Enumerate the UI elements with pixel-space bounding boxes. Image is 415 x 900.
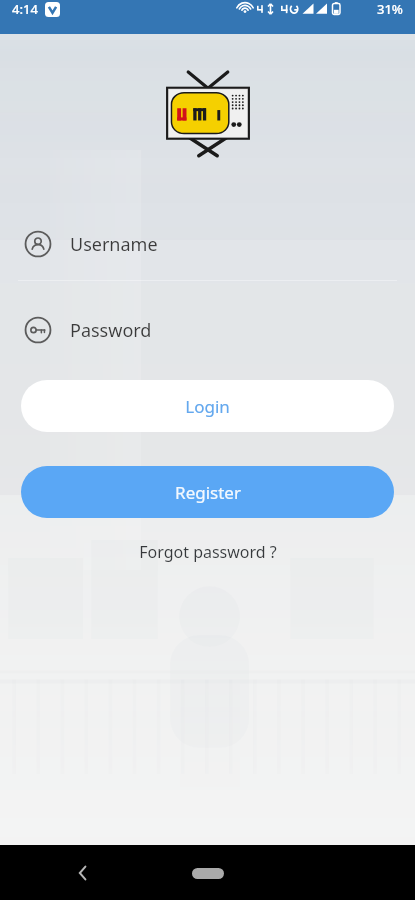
staticText: Password — [70, 318, 152, 343]
button[interactable]: Register — [21, 466, 394, 518]
button[interactable]: Username — [0, 221, 415, 281]
button[interactable]: Forgot password ? — [129, 536, 287, 568]
other: Username — [24, 230, 52, 258]
staticText: Forgot password ? — [139, 541, 277, 563]
button[interactable]: Login — [21, 380, 394, 432]
staticText: Username — [70, 232, 158, 257]
button[interactable]: Password — [0, 307, 415, 353]
button[interactable]: Home — [178, 858, 238, 888]
staticText: 4:14 — [12, 0, 38, 18]
staticText: Register — [175, 481, 241, 504]
staticText: 31% — [377, 0, 403, 18]
other: App logo — [162, 67, 254, 159]
button[interactable]: Back — [62, 852, 104, 894]
staticText: Login — [185, 395, 230, 418]
other: Password — [24, 316, 52, 344]
